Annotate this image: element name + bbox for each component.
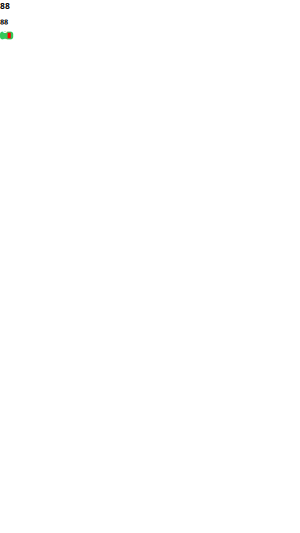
staticText: 88 <box>0 17 8 27</box>
staticText: 88 <box>0 0 10 12</box>
staticText: 88 <box>2 24 7 47</box>
